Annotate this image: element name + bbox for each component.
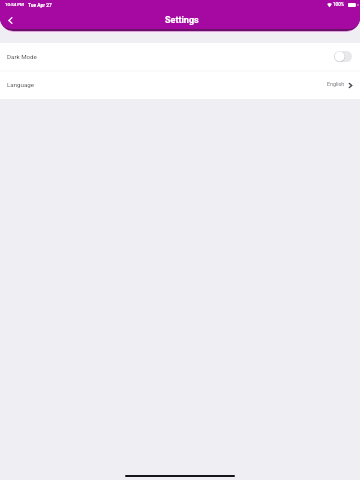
staticText: Settings: [165, 15, 199, 26]
staticText: 10:54 PM: [5, 2, 24, 7]
button[interactable]: Dark Mode toggle: [334, 51, 352, 62]
button[interactable]: Back: [0, 10, 20, 29]
staticText: English: [327, 81, 345, 87]
button[interactable]: Dark Mode: [0, 43, 360, 71]
staticText: Language: [7, 81, 35, 88]
staticText: Tue Apr 27: [28, 2, 52, 8]
staticText: 100%: [333, 2, 345, 7]
button[interactable]: Language: [0, 71, 360, 99]
staticText: Dark Mode: [7, 53, 37, 60]
